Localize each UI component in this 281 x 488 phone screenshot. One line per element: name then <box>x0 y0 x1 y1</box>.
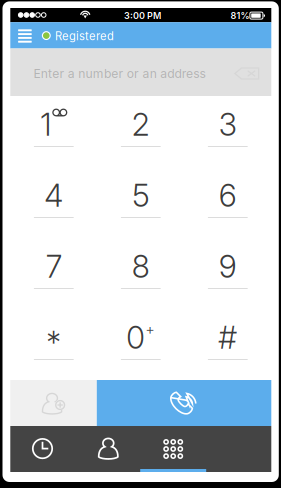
staticText: 5 <box>132 177 149 214</box>
button[interactable]: 5 <box>97 167 184 238</box>
button[interactable]: 8 <box>97 238 184 309</box>
button[interactable]: 3 <box>184 96 271 167</box>
button[interactable]: * <box>10 309 97 380</box>
staticText: * <box>46 324 61 361</box>
button[interactable]: 2 <box>97 96 184 167</box>
button[interactable]: Add contact <box>10 380 97 426</box>
button[interactable]: 0 <box>97 309 184 380</box>
button[interactable]: Keypad <box>140 426 206 472</box>
staticText: Enter a number or an address <box>33 66 205 81</box>
button[interactable]: 1 <box>10 96 97 167</box>
button[interactable]: 9 <box>184 238 271 309</box>
staticText: 3:00 PM <box>124 10 161 21</box>
button[interactable]: Contacts <box>75 425 141 471</box>
staticText: Registered <box>55 29 114 43</box>
staticText: 9 <box>219 248 237 285</box>
staticText: 81% <box>231 10 250 21</box>
button[interactable]: Call <box>97 380 271 426</box>
button[interactable]: 4 <box>10 167 97 238</box>
staticText: 7 <box>46 248 62 285</box>
staticText: # <box>218 319 237 356</box>
button[interactable]: # <box>184 309 271 380</box>
staticText: 6 <box>219 177 237 214</box>
staticText: 4 <box>44 177 63 214</box>
staticText: 8 <box>132 248 150 285</box>
staticText: 1 <box>40 106 51 143</box>
button[interactable]: 7 <box>10 238 97 309</box>
staticText: 0 <box>126 319 145 356</box>
button[interactable]: Recents <box>9 426 75 472</box>
staticText: + <box>145 320 155 338</box>
staticText: 3 <box>219 106 237 143</box>
button[interactable]: 6 <box>184 167 271 238</box>
staticText: 2 <box>132 106 150 143</box>
button[interactable]: Menu <box>12 23 38 49</box>
